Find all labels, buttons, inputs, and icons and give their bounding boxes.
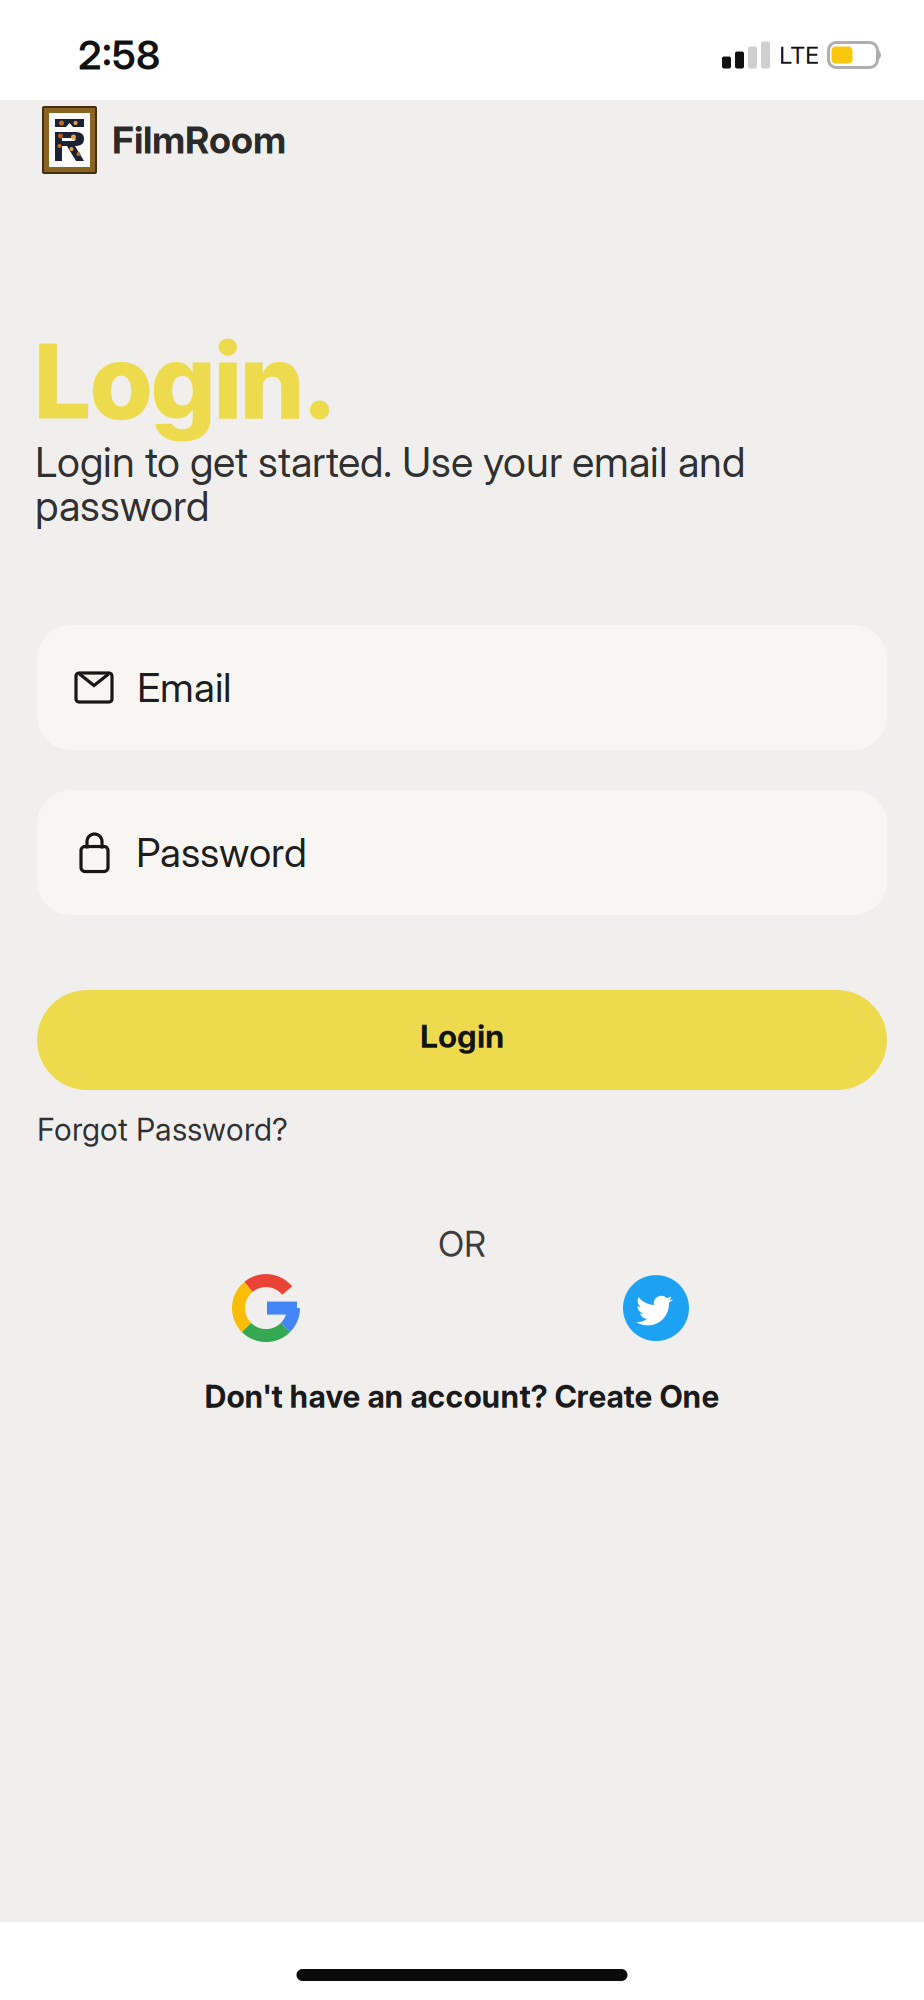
button[interactable]: Password [37,790,887,915]
staticText: Don't have an account? Create One [204,1378,719,1415]
staticText: FilmRoom [112,117,286,163]
button[interactable]: Email [37,625,887,750]
staticText: Login [420,1017,504,1055]
staticText: Login. [35,319,337,443]
staticText: Email [137,663,231,712]
button[interactable]: Login [37,990,887,1090]
staticText: OR [438,1223,486,1265]
button[interactable]: Sign in with Twitter [623,1275,689,1341]
staticText: Password [136,828,307,877]
staticText: Forgot Password? [37,1111,288,1148]
staticText: Login to get started. Use your email and… [35,440,745,528]
button[interactable]: Sign in with Google [231,1273,301,1343]
staticText: 2:58 [78,31,160,79]
staticText: LTE [779,40,819,69]
button[interactable]: Forgot Password? [37,1111,288,1148]
button[interactable]: Don't have an account? Create One [204,1378,719,1415]
